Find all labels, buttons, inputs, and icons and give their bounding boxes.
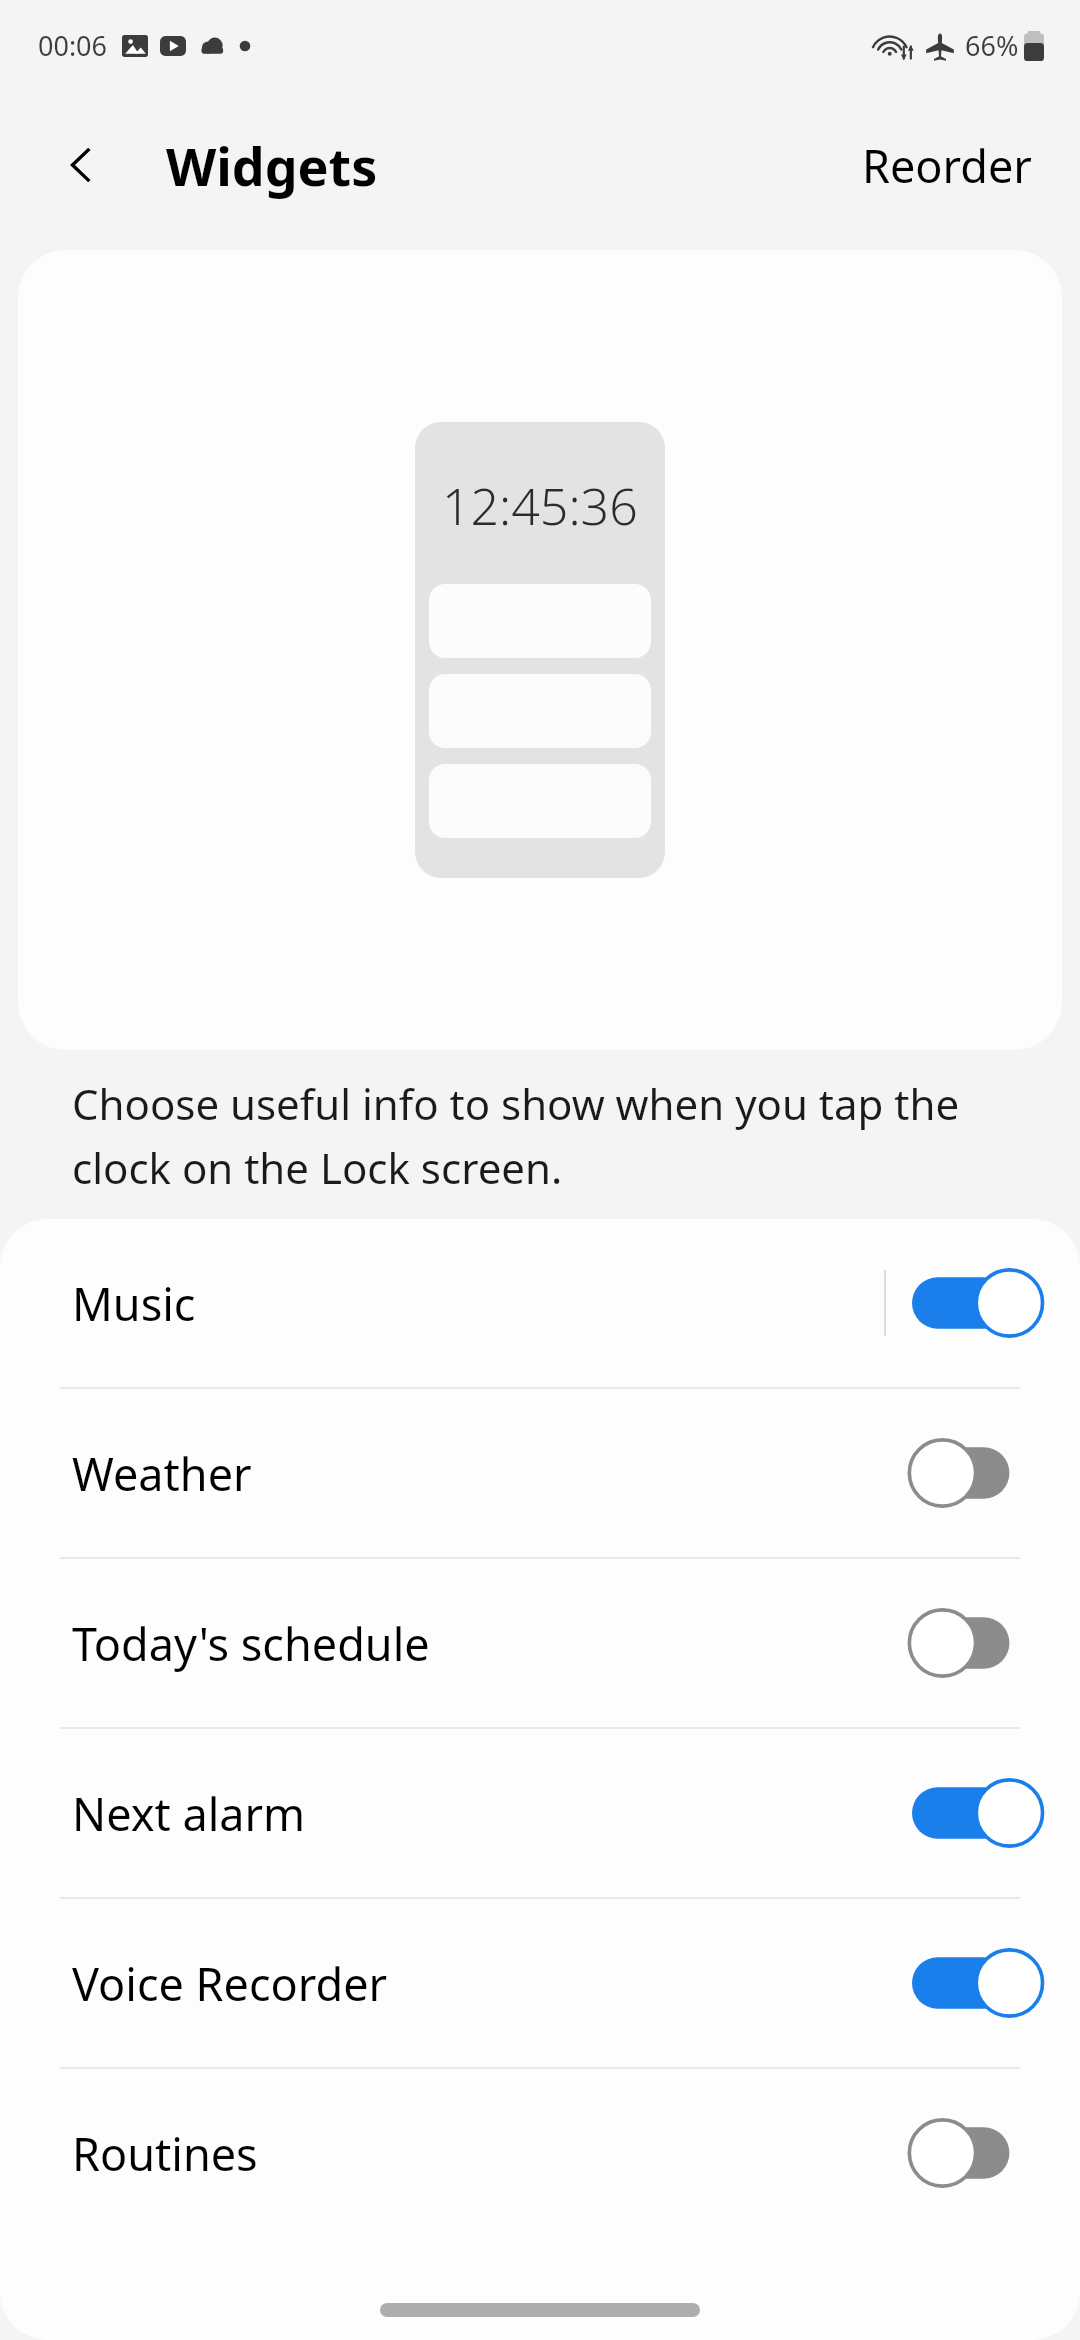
button[interactable]: Reorder xyxy=(848,125,1046,206)
button[interactable]: 12:45:36 xyxy=(415,422,665,878)
staticText: Weather xyxy=(72,1443,912,1504)
button[interactable]: Music xyxy=(0,1219,1080,1387)
staticText: Music xyxy=(72,1273,884,1334)
staticText: Widgets xyxy=(166,130,378,201)
button[interactable]: Routines off xyxy=(912,2110,1028,2196)
button[interactable]: Next alarm on xyxy=(912,1770,1028,1856)
staticText: Routines xyxy=(72,2123,912,2184)
button[interactable]: Voice Recorder on xyxy=(912,1940,1028,2026)
button[interactable]: Routines xyxy=(0,2069,1080,2237)
button[interactable]: Today's schedule off xyxy=(912,1600,1028,1686)
staticText: 12:45:36 xyxy=(442,472,638,540)
button[interactable]: Back xyxy=(48,131,116,199)
button[interactable]: Voice Recorder xyxy=(0,1899,1080,2067)
staticText: Choose useful info to show when you tap … xyxy=(72,1075,1020,1197)
staticText: Today's schedule xyxy=(72,1613,912,1674)
staticText: Voice Recorder xyxy=(72,1953,912,2014)
staticText: 66% xyxy=(965,27,1019,64)
button[interactable]: Weather off xyxy=(912,1430,1028,1516)
button[interactable]: Next alarm xyxy=(0,1729,1080,1897)
staticText: Next alarm xyxy=(72,1783,912,1844)
button[interactable]: Today's schedule xyxy=(0,1559,1080,1727)
button[interactable]: Music on xyxy=(912,1260,1028,1346)
staticText: 00:06 xyxy=(38,27,108,64)
staticText: Reorder xyxy=(862,135,1032,196)
button[interactable]: Weather xyxy=(0,1389,1080,1557)
